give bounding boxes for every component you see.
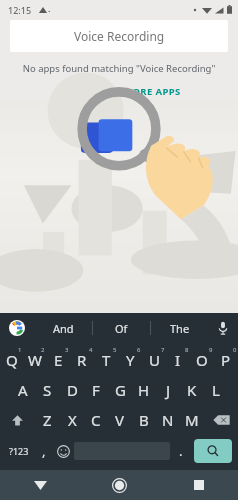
staticText: Voice Recording	[74, 28, 165, 44]
staticText: ?123	[9, 445, 29, 457]
staticText: 8	[185, 346, 189, 354]
button[interactable]: H	[132, 375, 156, 405]
button[interactable]: The	[151, 313, 208, 343]
staticText: M	[185, 410, 199, 430]
staticText: E	[54, 350, 63, 370]
staticText: 9	[209, 346, 213, 354]
button[interactable]: ,	[34, 435, 53, 467]
staticText: 1	[18, 346, 22, 354]
button[interactable]: Shift	[0, 405, 35, 435]
staticText: 5	[113, 346, 117, 354]
staticText: Of	[115, 321, 128, 336]
staticText: 4	[89, 346, 93, 354]
staticText: F	[92, 380, 100, 400]
staticText: D	[67, 380, 78, 400]
staticText: 7	[161, 346, 165, 354]
button[interactable]: Y	[118, 345, 142, 375]
button[interactable]: Back	[0, 470, 80, 500]
staticText: 6	[137, 346, 141, 354]
button[interactable]: M	[180, 405, 204, 435]
button[interactable]: F	[84, 375, 108, 405]
button[interactable]: Home	[80, 470, 159, 500]
staticText: 3	[65, 346, 69, 354]
staticText: 0	[233, 346, 237, 354]
button[interactable]: .	[170, 435, 191, 467]
staticText: 2	[41, 346, 45, 354]
button[interactable]: L	[204, 375, 228, 405]
staticText: C	[91, 410, 101, 430]
button[interactable]: And	[34, 313, 92, 343]
staticText: Z	[43, 410, 52, 430]
button[interactable]: S	[35, 375, 60, 405]
button[interactable]: B	[132, 405, 156, 435]
button[interactable]: ?123	[3, 435, 34, 467]
button[interactable]: E	[46, 345, 70, 375]
button[interactable]: Q	[0, 345, 23, 375]
staticText: Q	[6, 350, 18, 370]
staticText: S	[43, 380, 52, 400]
staticText: N	[162, 410, 174, 430]
staticText: W	[28, 350, 42, 370]
staticText: 12:15	[8, 4, 32, 16]
button[interactable]: Google	[0, 313, 34, 343]
button[interactable]: K	[180, 375, 204, 405]
button[interactable]: D	[60, 375, 84, 405]
button[interactable]: A	[10, 375, 35, 405]
button[interactable]: Recent apps	[159, 470, 238, 500]
button[interactable]: N	[156, 405, 180, 435]
staticText: O	[196, 350, 208, 370]
button[interactable]: X	[60, 405, 84, 435]
staticText: SEARCH FOR MORE APPS	[58, 85, 181, 98]
staticText: J	[166, 380, 171, 400]
button[interactable]: I	[166, 345, 190, 375]
button[interactable]: C	[84, 405, 108, 435]
staticText: No apps found matching "Voice Recording"	[0, 62, 238, 75]
button[interactable]: O	[190, 345, 214, 375]
staticText: T	[102, 350, 111, 370]
staticText: ,	[42, 442, 46, 460]
staticText: The	[170, 321, 190, 336]
button[interactable]: R	[70, 345, 94, 375]
button[interactable]: V	[108, 405, 132, 435]
staticText: Y	[126, 350, 135, 370]
button[interactable]: Emoji	[53, 435, 74, 467]
staticText: A	[18, 380, 28, 400]
staticText: U	[149, 350, 160, 370]
staticText: P	[221, 350, 231, 370]
button[interactable]: Backspace	[204, 405, 238, 435]
staticText: I	[175, 350, 181, 370]
staticText: K	[187, 380, 197, 400]
button[interactable]: U	[142, 345, 166, 375]
button[interactable]: Voice input	[208, 313, 238, 343]
staticText: .	[179, 442, 183, 460]
button[interactable]: SEARCH FOR MORE APPS	[50, 83, 189, 100]
button[interactable]: P	[214, 345, 238, 375]
staticText: G	[115, 380, 126, 400]
button[interactable]: Of	[93, 313, 150, 343]
staticText: H	[138, 380, 150, 400]
staticText: And	[53, 321, 74, 336]
button[interactable]: Z	[35, 405, 60, 435]
staticText: X	[68, 410, 77, 430]
button[interactable]: Search	[194, 439, 232, 463]
staticText: B	[139, 410, 149, 430]
button[interactable]: T	[94, 345, 118, 375]
staticText: R	[77, 350, 87, 370]
button[interactable]: G	[108, 375, 132, 405]
button[interactable]: Voice Recording	[10, 20, 228, 52]
staticText: V	[115, 410, 125, 430]
button[interactable]: W	[23, 345, 46, 375]
button[interactable]: J	[156, 375, 180, 405]
staticText: L	[212, 380, 220, 400]
